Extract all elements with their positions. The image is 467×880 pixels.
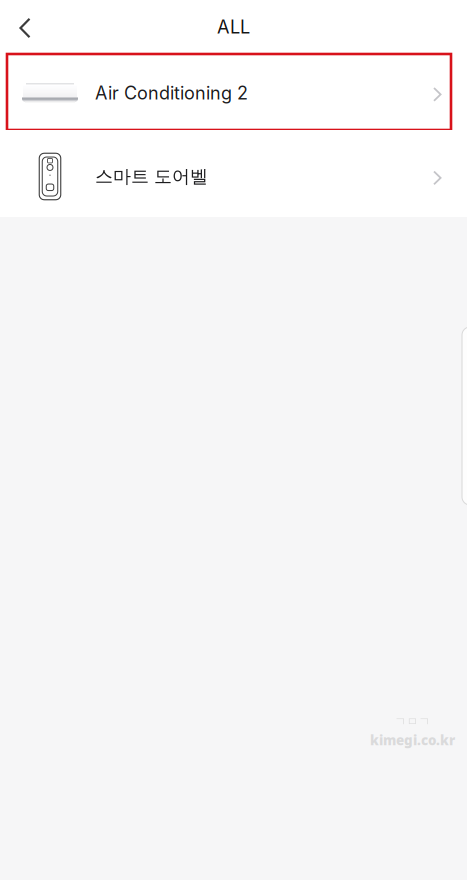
- staticText: 스마트 도어벨: [95, 165, 208, 188]
- staticText: kimegi.co.kr: [370, 731, 455, 749]
- staticText: Air Conditioning 2: [95, 82, 248, 104]
- button[interactable]: Back: [0, 2, 47, 51]
- button[interactable]: 스마트 도어벨: [0, 130, 467, 217]
- staticText: ㄱㅁㄱ: [394, 714, 430, 729]
- button[interactable]: Air Conditioning 2: [0, 54, 467, 130]
- staticText: ALL: [217, 16, 250, 38]
